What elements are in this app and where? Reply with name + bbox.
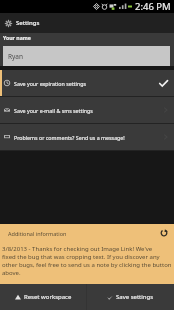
staticText: Ryan xyxy=(8,52,24,61)
button[interactable]: Reset workspace xyxy=(0,284,86,310)
button[interactable]: Refresh xyxy=(160,229,168,237)
staticText: Problems or comments? Send us a message! xyxy=(14,134,125,141)
button[interactable]: Save your e-mail & sms settings xyxy=(0,97,174,123)
staticText: Save your expiration settings xyxy=(14,80,86,87)
staticText: other bugs, feel free to send us a note … xyxy=(2,261,172,269)
staticText: Save settings xyxy=(116,293,154,301)
staticText: Reset workspace xyxy=(24,293,72,301)
button[interactable]: Save settings xyxy=(87,284,174,310)
button[interactable]: Save your expiration settings xyxy=(0,70,174,96)
staticText: Your name xyxy=(3,34,31,41)
staticText: Additional information xyxy=(8,230,67,237)
staticText: 3/8/2013 - Thanks for checking out Image… xyxy=(2,245,153,253)
other: App icon xyxy=(5,20,12,27)
staticText: 2:46 PM xyxy=(135,0,171,13)
staticText: Settings xyxy=(16,19,40,27)
staticText: Save your e-mail & sms settings xyxy=(14,107,93,114)
button[interactable]: App icon xyxy=(5,13,174,33)
staticText: fixed the bug that was cropping text. If… xyxy=(2,253,160,261)
staticText: above. xyxy=(2,269,21,277)
button[interactable]: Problems or comments? Send us a message! xyxy=(0,124,174,150)
button[interactable]: Ryan xyxy=(3,46,170,66)
